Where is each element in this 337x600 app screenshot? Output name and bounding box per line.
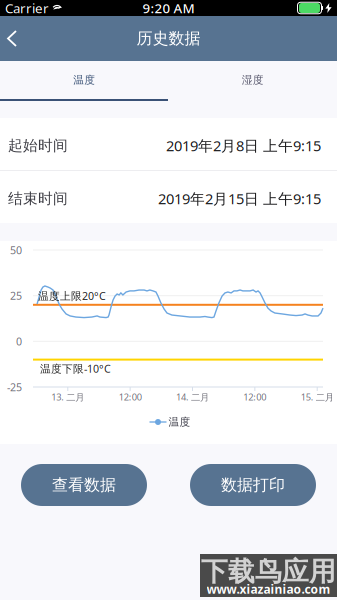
staticText: 9:20 AM [142,0,194,17]
staticText: 14. 二月 [176,391,209,403]
staticText: 湿度 [242,73,264,86]
button[interactable]: 温度 [0,61,168,99]
staticText: 12:00 [243,391,266,403]
staticText: 结束时间 [8,189,68,207]
button[interactable]: 湿度 [168,61,337,99]
staticText: 12:00 [119,391,142,403]
staticText: 2019年2月8日 上午9:15 [166,136,321,155]
staticText: 25 [10,289,22,303]
staticText: 13. 二月 [51,391,84,403]
staticText: 历史数据 [136,29,200,48]
staticText: 50 [10,243,22,257]
staticText: 查看数据 [52,475,116,495]
staticText: Carrier [5,0,49,17]
staticText: 温度下限-10°C [40,361,111,376]
staticText: 2019年2月15日 上午9:15 [158,189,321,208]
staticText: www.xiazainiao.com [206,581,330,597]
button[interactable]: Back [0,16,34,61]
staticText: 温度 [73,73,95,86]
staticText: 15. 二月 [301,391,334,403]
staticText: -25 [7,380,22,394]
staticText: 0 [16,334,22,348]
staticText: 数据打印 [221,475,285,495]
staticText: 起始时间 [8,136,68,154]
staticText: 温度 [168,415,190,428]
staticText: 温度上限20°C [38,289,106,303]
button[interactable]: 数据打印 [190,464,316,506]
button[interactable]: 查看数据 [21,464,147,506]
staticText: 下载鸟应用 [201,555,336,588]
